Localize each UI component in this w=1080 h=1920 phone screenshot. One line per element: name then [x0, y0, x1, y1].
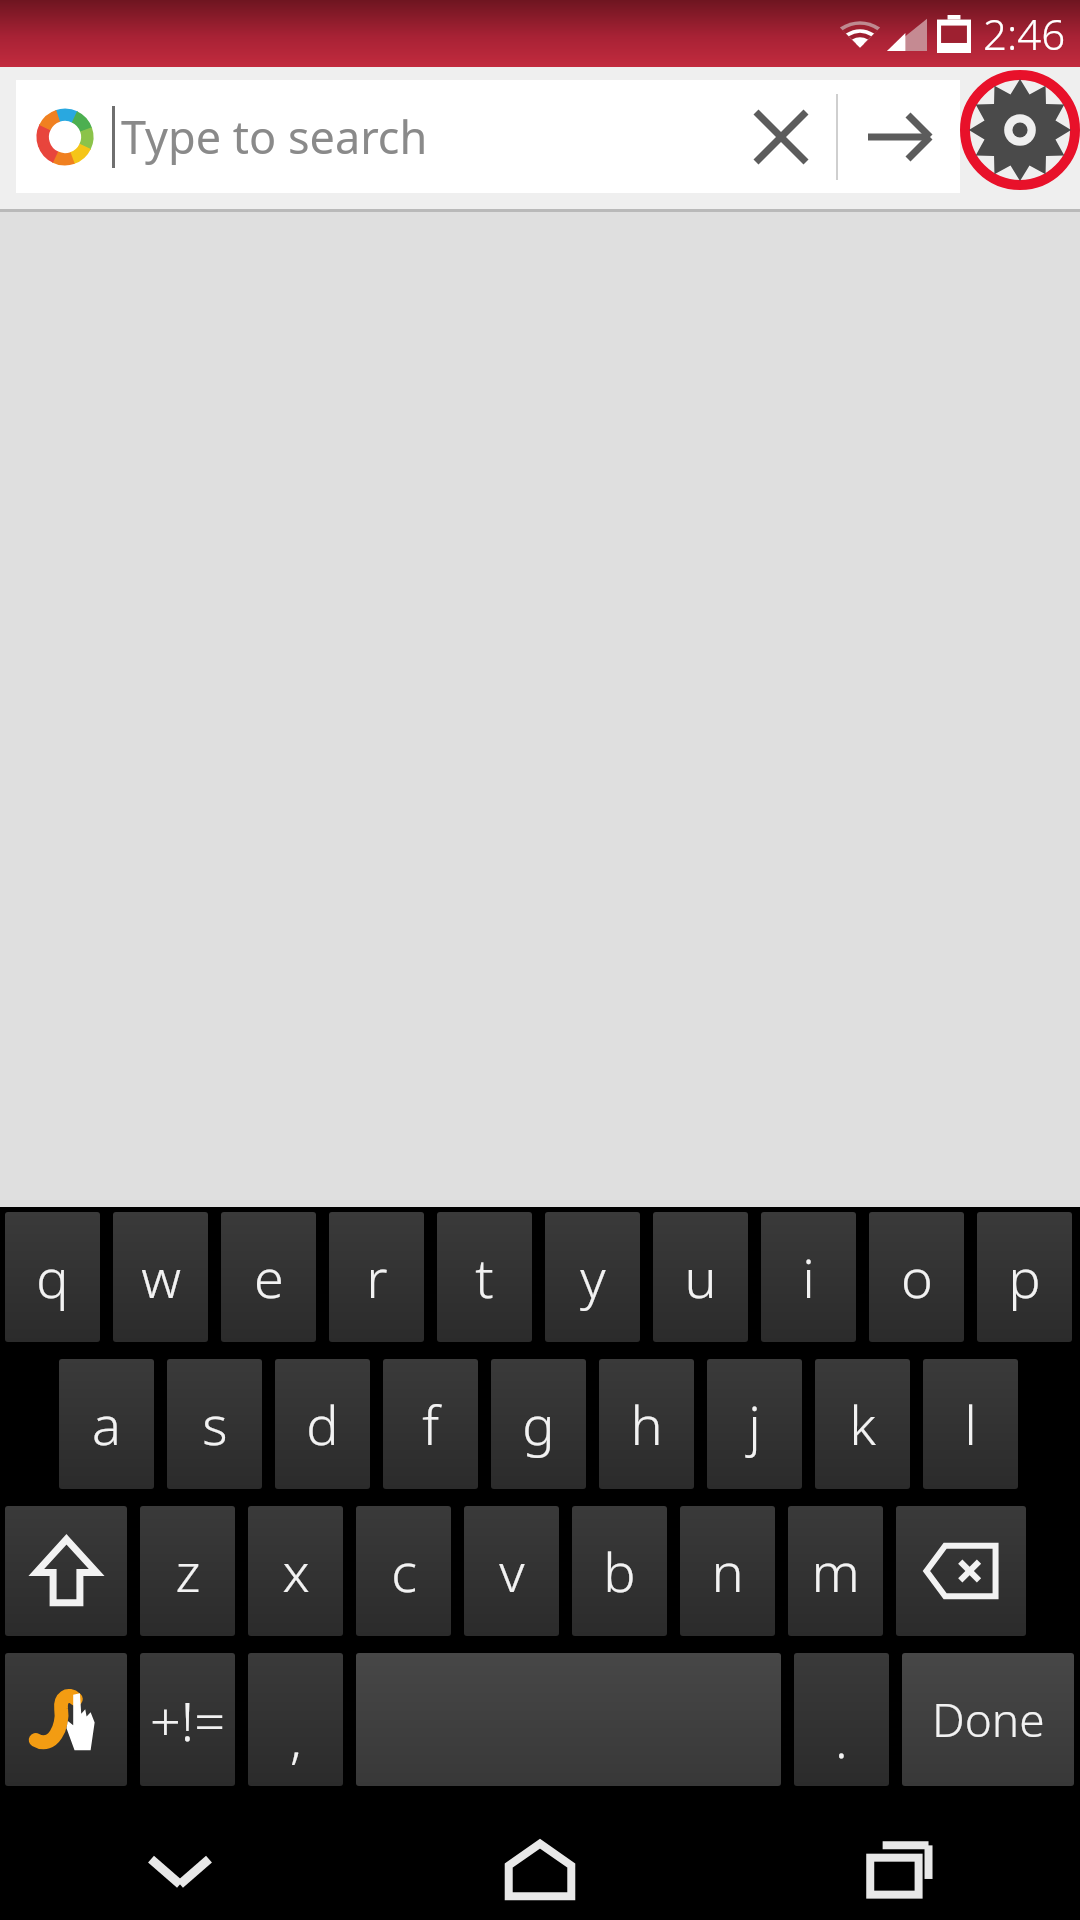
- staticText: Done: [932, 1688, 1045, 1751]
- button[interactable]: f: [383, 1359, 478, 1489]
- button[interactable]: d: [275, 1359, 370, 1489]
- button[interactable]: x: [248, 1506, 343, 1636]
- button[interactable]: y: [545, 1212, 640, 1342]
- button[interactable]: Recent apps: [720, 1820, 1080, 1920]
- staticText: o: [901, 1240, 933, 1314]
- staticText: i: [802, 1240, 815, 1314]
- button[interactable]: b: [572, 1506, 667, 1636]
- button[interactable]: p: [977, 1212, 1072, 1342]
- button[interactable]: Search: [838, 80, 960, 193]
- staticText: b: [603, 1534, 636, 1608]
- button[interactable]: u: [653, 1212, 748, 1342]
- staticText: q: [36, 1240, 69, 1314]
- button[interactable]: v: [464, 1506, 559, 1636]
- button[interactable]: Done: [902, 1653, 1074, 1786]
- staticText: v: [499, 1534, 525, 1608]
- button[interactable]: +!=: [140, 1653, 235, 1786]
- button[interactable]: Shift: [5, 1506, 127, 1636]
- staticText: x: [282, 1534, 310, 1608]
- button[interactable]: Clear: [726, 80, 836, 193]
- staticText: r: [366, 1240, 388, 1314]
- button[interactable]: t: [437, 1212, 532, 1342]
- staticText: p: [1008, 1240, 1041, 1314]
- button[interactable]: q: [5, 1212, 100, 1342]
- staticText: z: [175, 1534, 201, 1608]
- staticText: g: [522, 1387, 555, 1461]
- button[interactable]: Backspace: [896, 1506, 1026, 1636]
- staticText: t: [475, 1240, 494, 1314]
- button[interactable]: w: [113, 1212, 208, 1342]
- staticText: u: [684, 1240, 717, 1314]
- staticText: 2:46: [983, 5, 1066, 62]
- staticText: l: [964, 1387, 977, 1461]
- button[interactable]: e: [221, 1212, 316, 1342]
- button[interactable]: r: [329, 1212, 424, 1342]
- button[interactable]: Type to search: [16, 80, 960, 193]
- button[interactable]: m: [788, 1506, 883, 1636]
- button[interactable]: z: [140, 1506, 235, 1636]
- button[interactable]: k: [815, 1359, 910, 1489]
- staticText: j: [748, 1387, 761, 1461]
- button[interactable]: g: [491, 1359, 586, 1489]
- staticText: w: [141, 1240, 181, 1314]
- button[interactable]: c: [356, 1506, 451, 1636]
- staticText: ,: [290, 1702, 302, 1773]
- staticText: n: [711, 1534, 744, 1608]
- staticText: m: [811, 1534, 860, 1608]
- staticText: d: [306, 1387, 339, 1461]
- button[interactable]: o: [869, 1212, 964, 1342]
- button[interactable]: s: [167, 1359, 262, 1489]
- button[interactable]: .: [794, 1653, 889, 1786]
- button[interactable]: Hide keyboard: [0, 1820, 360, 1920]
- staticText: s: [202, 1387, 228, 1461]
- staticText: e: [254, 1240, 284, 1314]
- button[interactable]: Settings: [960, 67, 1080, 212]
- staticText: c: [391, 1534, 417, 1608]
- button[interactable]: j: [707, 1359, 802, 1489]
- button[interactable]: h: [599, 1359, 694, 1489]
- button[interactable]: ,: [248, 1653, 343, 1786]
- staticText: Type to search: [121, 106, 726, 167]
- staticText: f: [422, 1387, 439, 1461]
- button[interactable]: l: [923, 1359, 1018, 1489]
- staticText: .: [835, 1702, 848, 1773]
- button[interactable]: a: [59, 1359, 154, 1489]
- button[interactable]: Home: [360, 1820, 720, 1920]
- staticText: y: [580, 1240, 606, 1314]
- button[interactable]: i: [761, 1212, 856, 1342]
- button[interactable]: Swype input: [5, 1653, 127, 1786]
- staticText: +!=: [150, 1683, 225, 1757]
- button[interactable]: Space: [356, 1653, 781, 1786]
- button[interactable]: n: [680, 1506, 775, 1636]
- staticText: a: [92, 1387, 121, 1461]
- staticText: h: [630, 1387, 663, 1461]
- staticText: k: [849, 1387, 876, 1461]
